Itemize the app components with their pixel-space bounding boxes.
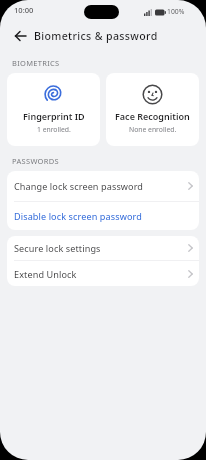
staticText: Secure lock settings: [14, 242, 101, 254]
staticText: 1 enrolled.: [37, 125, 71, 134]
button[interactable]: Fingerprint ID: [7, 73, 100, 146]
button[interactable]: Disable lock screen password: [7, 202, 199, 230]
staticText: BIOMETRICS: [12, 58, 60, 68]
button[interactable]: Secure lock settings: [7, 236, 199, 260]
staticText: PASSWORDS: [12, 156, 59, 166]
staticText: None enrolled.: [129, 125, 177, 134]
staticText: Change lock screen password: [14, 180, 144, 192]
staticText: Extend Unlock: [14, 268, 77, 280]
staticText: 100%: [167, 7, 185, 16]
staticText: Biometrics & password: [34, 29, 158, 43]
button[interactable]: Face Recognition: [106, 73, 199, 146]
button[interactable]: [8, 26, 32, 46]
button[interactable]: Change lock screen password: [7, 171, 199, 201]
staticText: 10:00: [14, 5, 34, 15]
staticText: Face Recognition: [115, 110, 190, 122]
button[interactable]: Extend Unlock: [7, 261, 199, 286]
staticText: Disable lock screen password: [14, 210, 142, 222]
staticText: Fingerprint ID: [23, 110, 85, 122]
